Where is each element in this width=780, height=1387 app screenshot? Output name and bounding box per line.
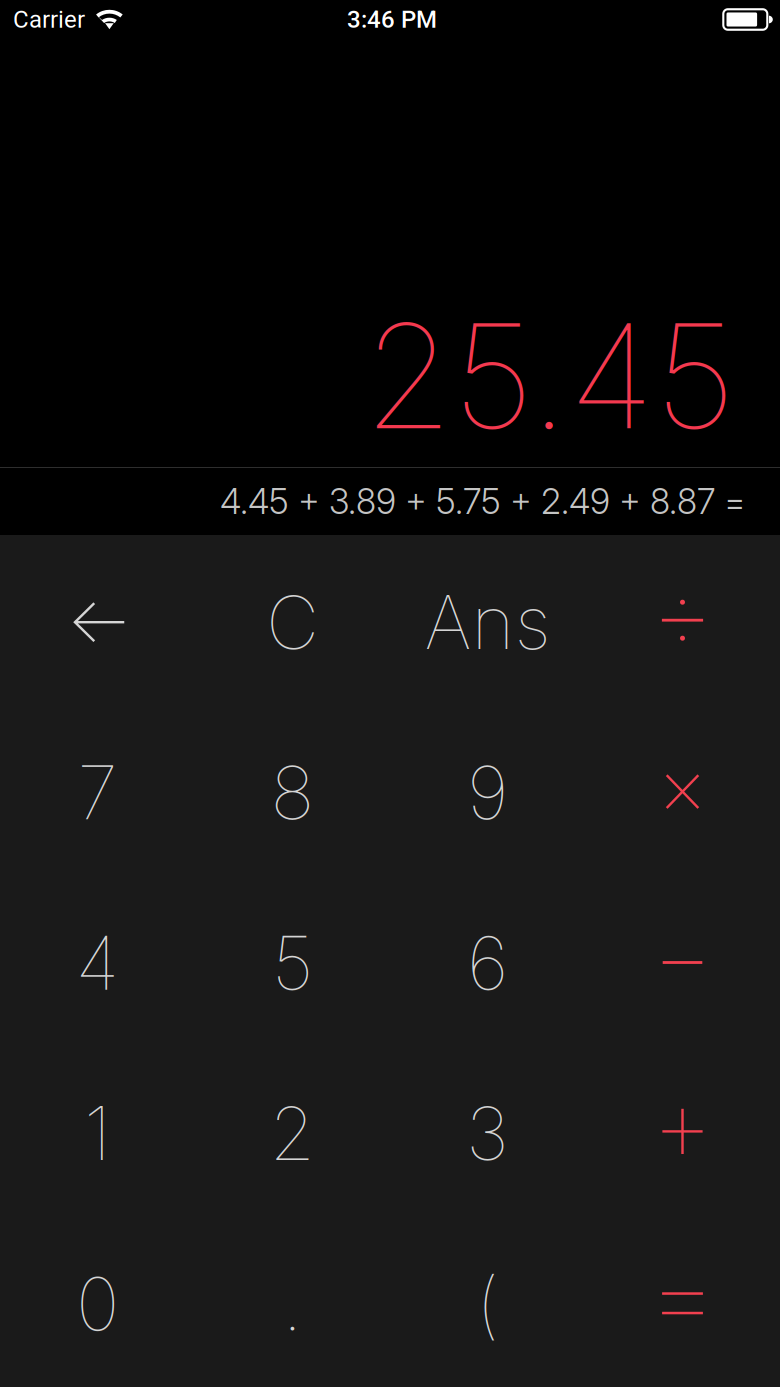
button[interactable]: Multiply: [585, 705, 780, 876]
staticText: .: [282, 1259, 302, 1348]
staticText: Ans: [424, 578, 550, 666]
staticText: 4.45 + 3.89 + 5.75 + 2.49 + 8.87 =: [220, 480, 746, 522]
staticText: 2: [269, 1089, 315, 1178]
staticText: 5: [272, 919, 313, 1007]
staticText: Carrier: [13, 5, 85, 33]
button[interactable]: Answer: [390, 535, 585, 705]
staticText: 3:46 PM: [347, 5, 437, 33]
button[interactable]: Backspace: [0, 535, 195, 705]
button[interactable]: Divide: [585, 535, 780, 705]
button[interactable]: 4: [0, 876, 195, 1046]
staticText: 6: [467, 919, 508, 1007]
button[interactable]: 2: [195, 1046, 390, 1217]
button[interactable]: Minus: [585, 876, 780, 1046]
button[interactable]: 1: [0, 1046, 195, 1217]
staticText: 25.45: [363, 289, 735, 463]
button[interactable]: Equals: [585, 1217, 780, 1387]
staticText: 7: [77, 748, 117, 837]
staticText: 1: [84, 1089, 111, 1178]
button[interactable]: Decimal point: [195, 1217, 390, 1387]
button[interactable]: Clear: [195, 535, 390, 705]
button[interactable]: 7: [0, 705, 195, 876]
staticText: 8: [270, 748, 314, 837]
staticText: 9: [467, 748, 508, 837]
staticText: (: [476, 1259, 499, 1348]
button[interactable]: 6: [390, 876, 585, 1046]
staticText: C: [266, 578, 319, 666]
staticText: 4: [75, 919, 119, 1007]
button[interactable]: 5: [195, 876, 390, 1046]
button[interactable]: 0: [0, 1217, 195, 1387]
staticText: 3: [466, 1089, 509, 1178]
button[interactable]: Plus: [585, 1046, 780, 1217]
button[interactable]: Open parenthesis: [390, 1217, 585, 1387]
button[interactable]: 9: [390, 705, 585, 876]
button[interactable]: 3: [390, 1046, 585, 1217]
staticText: 0: [76, 1259, 119, 1348]
button[interactable]: 8: [195, 705, 390, 876]
